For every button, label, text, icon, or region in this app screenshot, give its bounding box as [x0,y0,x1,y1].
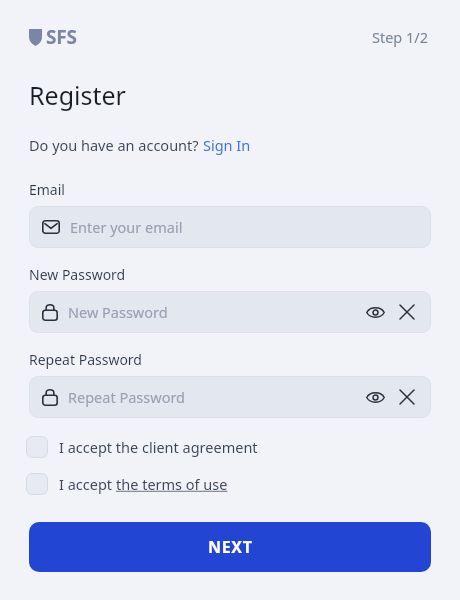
staticText: the terms of use [116,474,228,494]
staticText: NEXT [208,536,253,558]
staticText: Enter your email [70,217,183,237]
staticText: Sign In [203,135,251,155]
staticText: SFS [46,24,77,50]
button[interactable]: Sign In [203,135,251,155]
staticText: Step 1/2 [372,27,429,47]
button[interactable]: Repeat Password [29,376,431,418]
staticText: New Password [29,265,126,284]
button[interactable]: New Password [29,291,431,333]
button[interactable]: Show password [363,300,387,324]
staticText: Repeat Password [29,350,142,369]
staticText: I accept the client agreement [59,437,258,457]
staticText: Register [29,78,126,112]
staticText: I accept [59,474,116,494]
staticText: Email [29,180,65,199]
button[interactable]: Show password [363,385,387,409]
staticText: New Password [68,302,168,322]
staticText: Do you have an account? [29,135,203,155]
staticText: Repeat Password [68,387,186,407]
button[interactable]: NEXT [29,522,431,572]
button[interactable]: I accept [26,471,228,497]
button[interactable]: I accept the client agreement [26,434,258,460]
button[interactable]: Enter your email [29,206,431,248]
button[interactable]: Clear password [395,385,419,409]
button[interactable]: Clear password [395,300,419,324]
